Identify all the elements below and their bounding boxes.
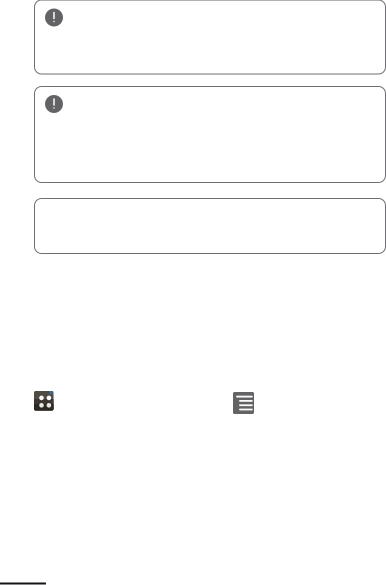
button[interactable] [34, 86, 385, 182]
button[interactable] [34, 198, 385, 253]
button[interactable]: Gallery [34, 391, 53, 410]
button[interactable] [34, 0, 385, 74]
button[interactable]: List view [233, 392, 254, 414]
